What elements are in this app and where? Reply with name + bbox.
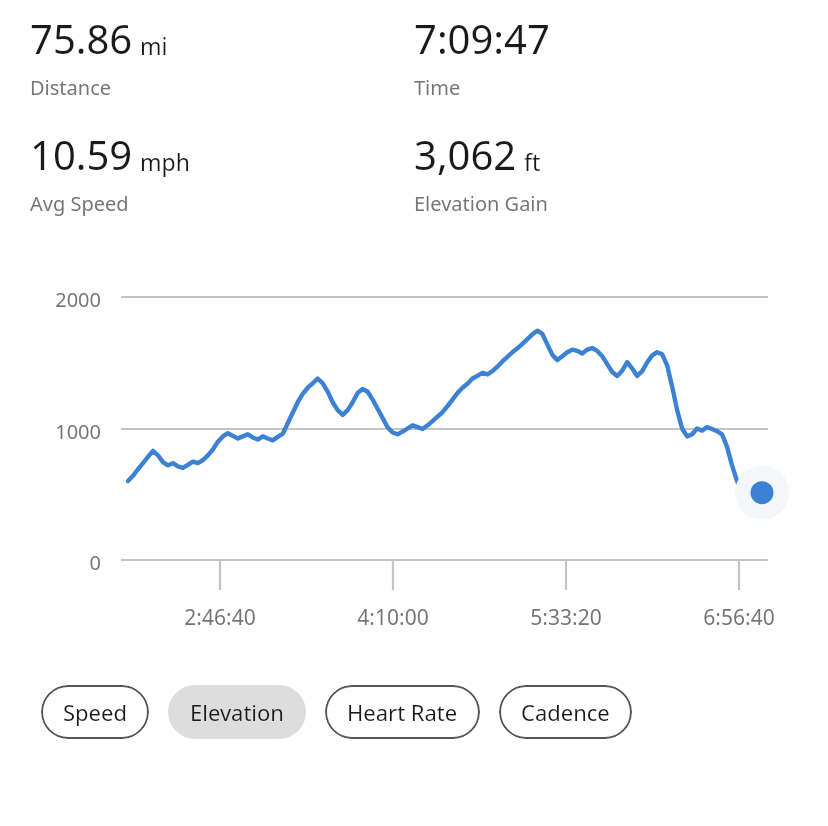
staticText: Elevation [190, 697, 284, 727]
staticText: 75.86 [30, 11, 133, 65]
staticText: 7:09:47 [414, 11, 550, 65]
staticText: mph [140, 146, 190, 177]
staticText: Heart Rate [347, 697, 458, 727]
staticText: 10.59 [30, 127, 133, 181]
staticText: 0 [0, 549, 101, 576]
staticText: ft [524, 146, 541, 177]
staticText: 3,062 [414, 127, 517, 181]
staticText: 5:33:20 [496, 603, 636, 632]
staticText: Avg Speed [30, 190, 129, 217]
staticText: Elevation Gain [414, 190, 548, 217]
button[interactable]: Elevation [168, 685, 306, 739]
button[interactable]: Heart Rate [325, 685, 480, 739]
staticText: 2:46:40 [150, 603, 290, 632]
staticText: Cadence [521, 697, 610, 727]
button[interactable]: Speed [41, 685, 149, 739]
staticText: 6:56:40 [669, 603, 809, 632]
staticText: Distance [30, 74, 112, 101]
staticText: Time [414, 74, 461, 101]
staticText: Speed [63, 697, 127, 727]
staticText: 1000 [0, 418, 101, 445]
staticText: mi [140, 30, 168, 61]
staticText: 4:10:00 [323, 603, 463, 632]
button[interactable]: Cadence [499, 685, 632, 739]
staticText: 2000 [0, 286, 101, 313]
